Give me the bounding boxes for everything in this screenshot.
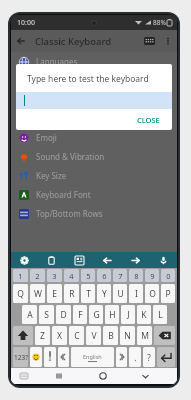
button[interactable]: Clipboard [38,252,65,268]
button[interactable]: Back [11,31,31,51]
staticText: 8 [134,271,139,281]
staticText: Z [40,330,45,342]
button[interactable]: CLOSE [133,112,164,128]
button[interactable]: Sound & Vibration [11,147,177,166]
button[interactable]: Previous [58,347,69,367]
staticText: Keyboard Font [36,189,91,200]
staticText: Y [102,288,107,300]
staticText: Emoji [36,132,57,143]
staticText: C [74,330,80,342]
button[interactable]: C [69,326,84,345]
button[interactable]: W [30,284,45,303]
staticText: R [69,288,75,300]
button[interactable]: Backspace [154,326,175,345]
staticText: 5 [86,271,91,281]
button[interactable]: 5 [81,269,95,282]
button[interactable]: S [39,305,54,324]
button[interactable]: Settings [11,252,38,268]
button[interactable]: Move right [121,252,149,268]
button[interactable]: J [121,305,135,324]
button[interactable]: Themes [11,109,177,128]
button[interactable]: Keyboard Font [11,185,177,204]
button[interactable]: A [22,305,37,324]
button[interactable]: Enter [157,347,175,367]
staticText: ? [147,352,151,363]
button[interactable]: Emoji [11,128,177,147]
button[interactable]: 7 [113,269,127,282]
staticText: Predictions & Corrections [36,75,132,86]
button[interactable]: L [153,305,167,324]
button[interactable]: I [129,284,143,303]
button[interactable]: T [81,284,95,303]
button[interactable]: Q [13,284,28,303]
button[interactable]: Gestures [11,90,177,109]
staticText: F [78,309,83,321]
staticText: . [134,352,137,363]
button[interactable]: M [137,326,152,345]
button[interactable]: Layout [65,252,93,268]
button[interactable]: V [86,326,101,345]
staticText: 2 [35,271,40,281]
button[interactable]: Back [124,368,167,384]
button[interactable]: Test keyboard [139,31,159,51]
staticText: A [27,309,33,321]
staticText: English [83,353,102,360]
button[interactable]: Hide keyboard [11,368,37,384]
button[interactable]: Key Size [11,166,177,185]
button[interactable]: Move left [93,252,121,268]
staticText: 4 [69,271,74,281]
button[interactable]: Voice input [149,252,177,268]
button[interactable]: X [52,326,67,345]
button[interactable]: Home [81,368,124,384]
button[interactable]: 2 [30,269,45,282]
button[interactable]: F [73,305,87,324]
button[interactable]: R [64,284,79,303]
button[interactable]: Predictions & Corrections [11,71,177,90]
button[interactable]: Languages [11,52,177,71]
button[interactable]: Recents [37,368,81,384]
button[interactable]: Emoji [30,347,42,367]
button[interactable]: 0 [161,269,175,282]
staticText: H [109,309,116,321]
staticText: 123? [14,353,28,362]
button[interactable]: 1 [13,269,28,282]
button[interactable]: English [71,347,114,367]
staticText: 3 [52,271,57,281]
staticText: Top/Bottom Rows [36,208,103,219]
staticText: P [165,288,171,300]
staticText: CLOSE [137,115,160,125]
button[interactable]: Next [116,347,127,367]
button[interactable]: 3 [47,269,62,282]
staticText: L [158,309,163,321]
button[interactable]: U [113,284,127,303]
button[interactable]: More options [159,32,177,50]
button[interactable]: Top/Bottom Rows [11,204,177,223]
button[interactable]: O [145,284,159,303]
button[interactable]: Y [97,284,111,303]
staticText: Q [17,288,24,300]
button[interactable]: H [105,305,119,324]
button[interactable]: 8 [129,269,143,282]
button[interactable]: 4 [64,269,79,282]
staticText: I [135,288,138,300]
staticText: O [149,288,156,300]
staticText: Classic Keyboard [35,35,112,48]
button[interactable]: . [129,347,141,367]
button[interactable]: 123? [13,347,28,367]
button[interactable]: ? [143,347,155,367]
button[interactable]: E [47,284,62,303]
staticText: E [52,288,57,300]
button[interactable]: N [120,326,135,345]
button[interactable]: G [89,305,103,324]
button[interactable]: 6 [97,269,111,282]
button[interactable]: B [103,326,118,345]
button[interactable]: P [161,284,175,303]
button[interactable]: 9 [145,269,159,282]
button[interactable]: Z [35,326,50,345]
staticText: 10:00 [17,18,35,28]
staticText: W [34,288,42,300]
button[interactable]: D [56,305,71,324]
button[interactable]: Shift [13,326,33,345]
button[interactable]: Voice input [44,347,56,367]
button[interactable]: K [137,305,151,324]
